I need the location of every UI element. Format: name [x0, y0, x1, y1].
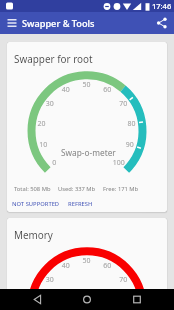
staticText: Swapper for root: [14, 52, 93, 65]
staticText: REFRESH: [68, 200, 93, 208]
staticText: Total: 508 Mb: [14, 185, 51, 193]
staticText: 17:46: [152, 1, 172, 11]
button[interactable]: Home: [75, 289, 99, 310]
staticText: Swap-o-meter: [61, 147, 116, 158]
button[interactable]: Recent apps: [125, 289, 149, 310]
button[interactable]: REFRESH: [66, 199, 95, 209]
button[interactable]: Open navigation drawer: [5, 16, 19, 30]
staticText: NOT SUPPORTED: [12, 200, 60, 208]
button[interactable]: Share: [155, 16, 169, 30]
button[interactable]: Back: [26, 289, 50, 310]
button[interactable]: NOT SUPPORTED: [10, 199, 62, 209]
button[interactable]: Memory: [7, 218, 167, 310]
staticText: Free: 171 Mb: [103, 185, 139, 193]
staticText: Used: 337 Mb: [58, 185, 96, 193]
staticText: Swapper & Tools: [22, 17, 95, 30]
staticText: Memory: [14, 228, 53, 241]
button[interactable]: Swapper for root: [7, 42, 167, 212]
